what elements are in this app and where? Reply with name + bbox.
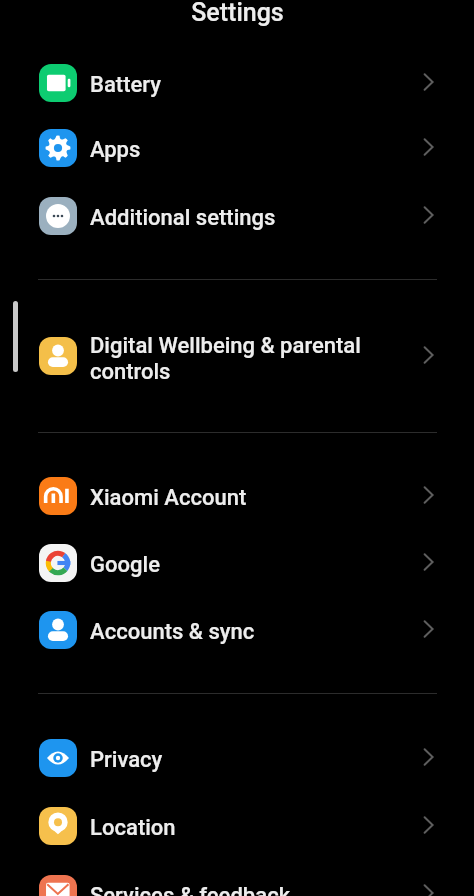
button[interactable]: Location	[0, 792, 474, 859]
button[interactable]: Services & feedback	[0, 860, 474, 896]
button[interactable]: Apps	[0, 114, 474, 181]
button[interactable]: Battery	[0, 49, 474, 116]
button[interactable]: Google	[0, 529, 474, 596]
staticText: Privacy	[90, 747, 423, 773]
staticText: Settings	[191, 0, 284, 27]
staticText: Additional settings	[90, 205, 423, 231]
staticText: Location	[90, 815, 423, 841]
staticText: Digital Wellbeing & parental controls	[90, 333, 365, 384]
staticText: Accounts & sync	[90, 619, 423, 645]
button[interactable]: Additional settings	[0, 182, 474, 249]
staticText: Battery	[90, 72, 423, 98]
staticText: Xiaomi Account	[90, 485, 423, 511]
button[interactable]: Xiaomi Account	[0, 462, 474, 529]
staticText: Apps	[90, 137, 423, 163]
button[interactable]: Digital Wellbeing & parental controls	[0, 311, 474, 401]
button[interactable]: Accounts & sync	[0, 596, 474, 663]
staticText: Services & feedback	[90, 883, 423, 896]
button[interactable]: Privacy	[0, 724, 474, 791]
staticText: Google	[90, 552, 423, 578]
